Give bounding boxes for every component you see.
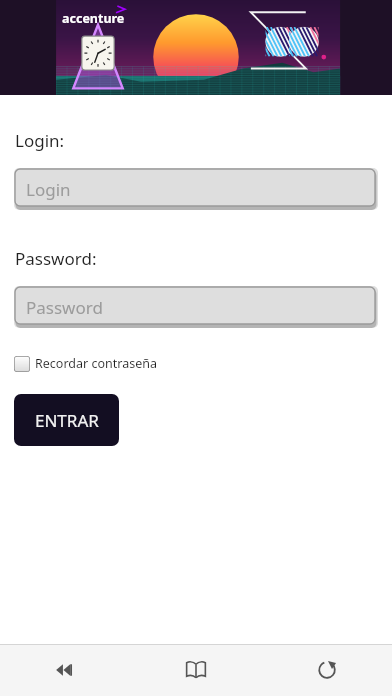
staticText: Login: (15, 129, 65, 152)
button[interactable]: Login (14, 168, 378, 210)
staticText: accenture (62, 10, 125, 27)
staticText: Password: (15, 247, 97, 270)
button[interactable]: Password (14, 286, 378, 328)
button[interactable]: Recordar contraseña (12, 353, 159, 374)
button[interactable]: Back (0, 644, 130, 696)
button[interactable]: ENTRAR (14, 394, 119, 446)
staticText: Login (26, 178, 71, 201)
staticText: Recordar contraseña (35, 355, 157, 372)
staticText: Password (26, 296, 103, 319)
button[interactable]: Bookmarks (130, 644, 261, 696)
staticText: ENTRAR (35, 409, 99, 432)
button[interactable]: Reload (261, 644, 392, 696)
